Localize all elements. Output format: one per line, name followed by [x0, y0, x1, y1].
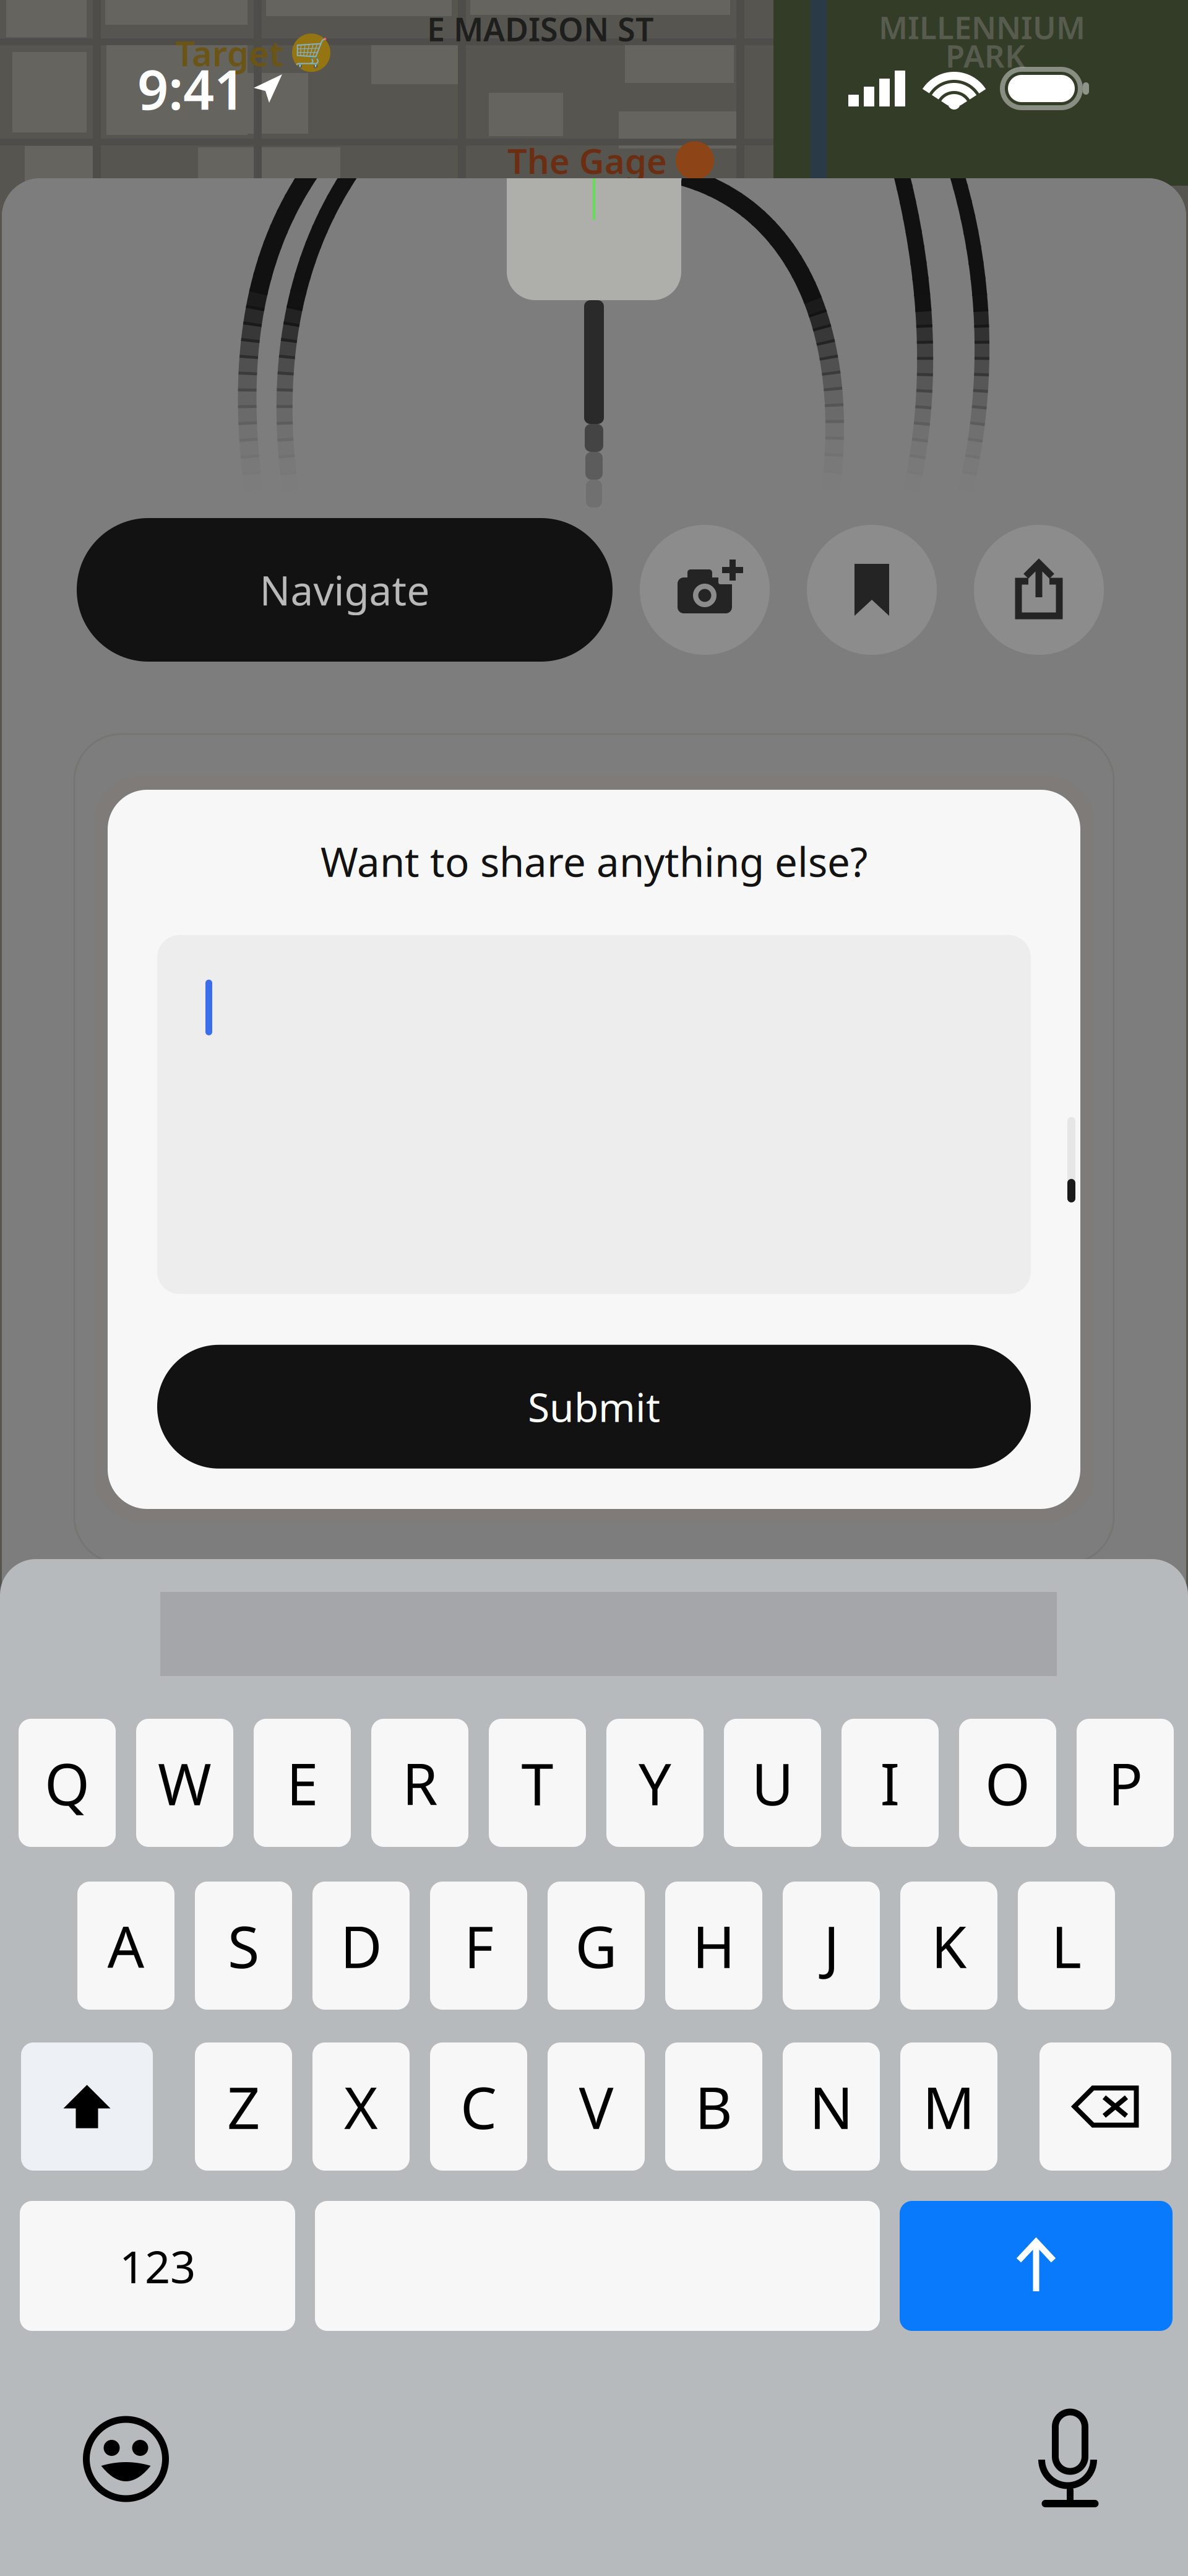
button[interactable]: Save: [807, 525, 937, 655]
button[interactable]: W: [136, 1719, 233, 1847]
staticText: 9:41: [137, 52, 245, 125]
button[interactable]: C: [430, 2042, 527, 2171]
staticText: G: [575, 1907, 617, 1984]
staticText: T: [521, 1744, 553, 1821]
button[interactable]: M: [900, 2042, 997, 2171]
staticText: F: [464, 1907, 493, 1984]
button[interactable]: T: [489, 1719, 586, 1847]
button[interactable]: Navigate: [77, 518, 613, 662]
button[interactable]: I: [841, 1719, 939, 1847]
button[interactable]: X: [312, 2042, 410, 2171]
button[interactable]: K: [900, 1882, 997, 2010]
staticText: Q: [45, 1744, 90, 1821]
button[interactable]: E: [254, 1719, 351, 1847]
button[interactable]: Submit: [157, 1345, 1031, 1469]
staticText: I: [880, 1744, 900, 1821]
button[interactable]: J: [783, 1882, 880, 2010]
button[interactable]: Z: [195, 2042, 292, 2171]
staticText: C: [460, 2068, 497, 2145]
staticText: MILLENNIUM: [879, 6, 1085, 48]
staticText: M: [923, 2068, 975, 2145]
staticText: Z: [227, 2068, 260, 2145]
button[interactable]: Y: [606, 1719, 704, 1847]
button[interactable]: P: [1077, 1719, 1174, 1847]
button[interactable]: A: [77, 1882, 174, 2010]
button[interactable]: R: [371, 1719, 468, 1847]
button[interactable]: L: [1018, 1882, 1115, 2010]
staticText: The Gage: [507, 137, 667, 183]
staticText: B: [695, 2068, 733, 2145]
button[interactable]: S: [195, 1882, 292, 2010]
staticText: U: [751, 1744, 794, 1821]
button[interactable]: Delete: [1039, 2042, 1171, 2171]
button[interactable]: U: [724, 1719, 821, 1847]
staticText: Target: [175, 30, 283, 76]
button[interactable]: 123: [20, 2201, 295, 2331]
staticText: Y: [639, 1744, 671, 1821]
button[interactable]: N: [783, 2042, 880, 2171]
staticText: S: [228, 1907, 259, 1984]
staticText: Navigate: [260, 563, 430, 617]
button[interactable]: Send: [900, 2201, 1173, 2331]
staticText: 🛒: [294, 37, 329, 69]
button[interactable]: D: [312, 1882, 410, 2010]
staticText: J: [824, 1907, 839, 1984]
staticText: R: [402, 1744, 438, 1821]
staticText: K: [931, 1907, 967, 1984]
staticText: V: [579, 2068, 613, 2145]
button[interactable]: O: [959, 1719, 1056, 1847]
staticText: W: [158, 1744, 212, 1821]
button[interactable]: V: [548, 2042, 645, 2171]
button[interactable]: Emoji: [85, 2418, 167, 2500]
button[interactable]: Share: [974, 525, 1104, 655]
staticText: Want to share anything else?: [321, 834, 867, 888]
button[interactable]: Shift: [21, 2042, 153, 2171]
staticText: P: [1108, 1744, 1143, 1821]
button[interactable]: B: [665, 2042, 762, 2171]
staticText: X: [344, 2068, 378, 2145]
staticText: H: [692, 1907, 735, 1984]
staticText: 123: [119, 2236, 196, 2295]
staticText: How was your experience?: [343, 1549, 845, 1602]
button[interactable]: H: [665, 1882, 762, 2010]
staticText: Submit: [528, 1380, 660, 1433]
staticText: O: [985, 1744, 1030, 1821]
staticText: PARK: [945, 35, 1025, 76]
button[interactable]: Add Photo: [640, 525, 770, 655]
button[interactable]: F: [430, 1882, 527, 2010]
staticText: D: [340, 1907, 382, 1984]
staticText: A: [107, 1907, 144, 1984]
button[interactable]: G: [548, 1882, 645, 2010]
button[interactable]: Dictate: [1033, 2401, 1107, 2517]
button[interactable]: Q: [19, 1719, 116, 1847]
staticText: E: [286, 1744, 318, 1821]
staticText: N: [809, 2068, 853, 2145]
staticText: E MADISON ST: [427, 7, 654, 50]
staticText: L: [1051, 1907, 1082, 1984]
